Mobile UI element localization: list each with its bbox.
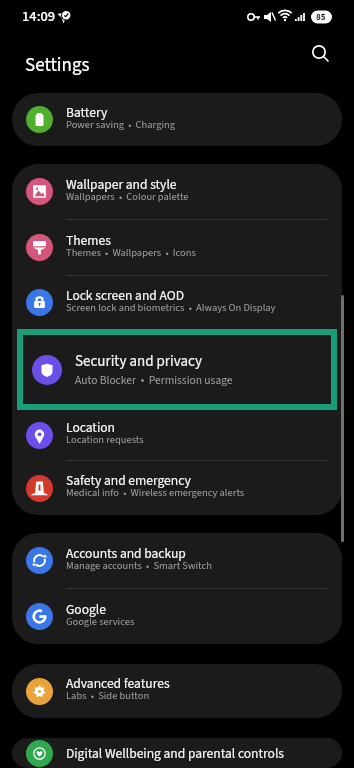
staticText: Power saving • Charging: [66, 117, 176, 132]
staticText: 14:09: [22, 6, 56, 27]
staticText: Google: [66, 600, 106, 619]
staticText: 85: [316, 11, 326, 24]
button[interactable]: Accounts and backup: [12, 533, 342, 588]
button[interactable]: Search: [305, 38, 333, 66]
button[interactable]: Safety and emergency: [12, 461, 342, 515]
staticText: Google services: [66, 614, 135, 629]
staticText: Location requests: [66, 432, 144, 447]
staticText: Themes: [66, 231, 111, 250]
staticText: Manage accounts • Smart Switch: [66, 558, 212, 573]
staticText: Auto Blocker • Permission usage: [75, 372, 233, 388]
staticText: Location: [66, 418, 115, 437]
staticText: Wallpapers • Colour palette: [66, 189, 189, 204]
button[interactable]: Google: [12, 589, 342, 644]
staticText: Digital Wellbeing and parental controls: [66, 744, 284, 763]
staticText: Safety and emergency: [66, 471, 191, 490]
staticText: Battery: [66, 103, 108, 122]
button[interactable]: Themes: [12, 220, 342, 275]
staticText: Security and privacy: [75, 351, 202, 372]
button[interactable]: Digital Wellbeing and parental controls: [12, 738, 342, 768]
staticText: Advanced features: [66, 674, 170, 693]
button[interactable]: Battery: [12, 93, 342, 146]
staticText: Accounts and backup: [66, 544, 186, 563]
staticText: Labs • Side button: [66, 688, 150, 703]
button[interactable]: Wallpaper and style: [12, 164, 342, 219]
button[interactable]: Location: [12, 410, 342, 460]
button[interactable]: Lock screen and AOD: [12, 276, 342, 329]
staticText: Wallpaper and style: [66, 175, 177, 194]
staticText: Lock screen and AOD: [66, 286, 184, 305]
staticText: Screen lock and biometrics • Always On D…: [66, 300, 276, 315]
staticText: Settings: [25, 52, 90, 79]
button[interactable]: Advanced features: [12, 664, 342, 718]
staticText: Medical info • Wireless emergency alerts: [66, 485, 245, 500]
staticText: Themes • Wallpapers • Icons: [66, 245, 196, 260]
button[interactable]: Security and privacy: [17, 329, 337, 410]
